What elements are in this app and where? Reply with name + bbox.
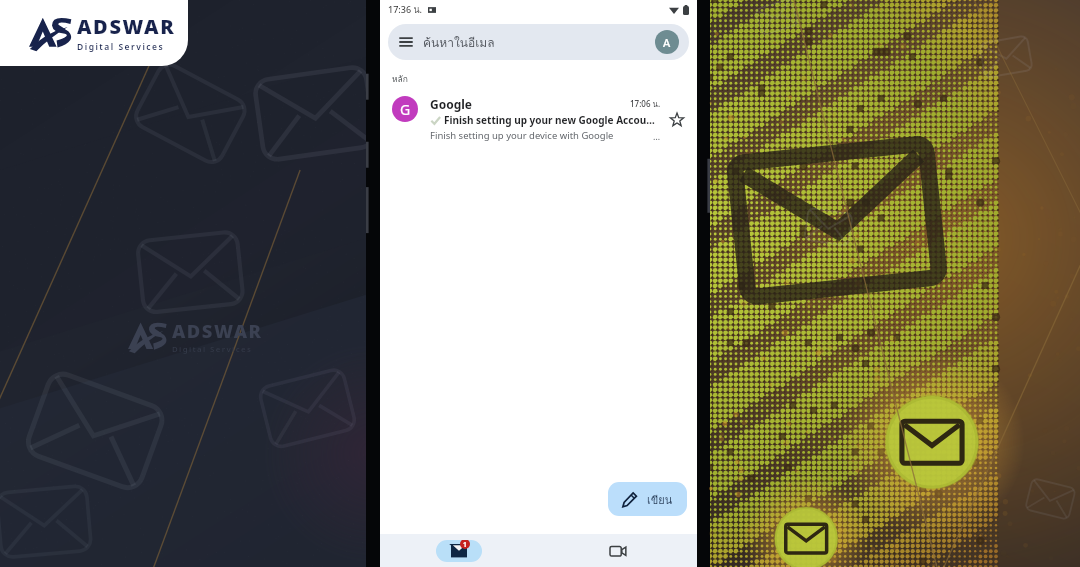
button[interactable]: ADSWAR Digital Services	[0, 0, 188, 66]
staticText: 17:36 น.	[388, 3, 422, 17]
staticText: Digital Services	[172, 344, 253, 355]
staticText: หลัก	[392, 72, 408, 86]
staticText: A	[663, 35, 671, 50]
staticText: ADSWAR	[77, 13, 176, 40]
staticText: 17:06 น.	[630, 98, 661, 111]
staticText: Finish setting up your device with Googl…	[430, 129, 614, 142]
staticText: ADSWAR	[172, 318, 263, 343]
staticText: เขียน	[647, 491, 673, 508]
button[interactable]: G	[380, 88, 697, 150]
staticText: G	[400, 100, 411, 119]
button[interactable]: Meet	[595, 540, 641, 562]
staticText: Google	[430, 96, 473, 112]
button[interactable]: Account	[655, 30, 679, 54]
staticText: Finish setting up your new Google Accoun…	[444, 113, 661, 127]
button[interactable]: Star	[667, 110, 687, 130]
button[interactable]: เขียน	[608, 482, 687, 516]
other: Open navigation menu	[398, 34, 414, 50]
staticText: Digital Services	[77, 41, 165, 53]
staticText: ค้นหาในอีเมล	[423, 33, 495, 52]
button[interactable]: Open navigation menu	[388, 24, 689, 60]
staticText: 1	[463, 540, 467, 549]
staticText: …	[653, 130, 661, 142]
button[interactable]: Mail, 1 unread	[436, 540, 482, 562]
